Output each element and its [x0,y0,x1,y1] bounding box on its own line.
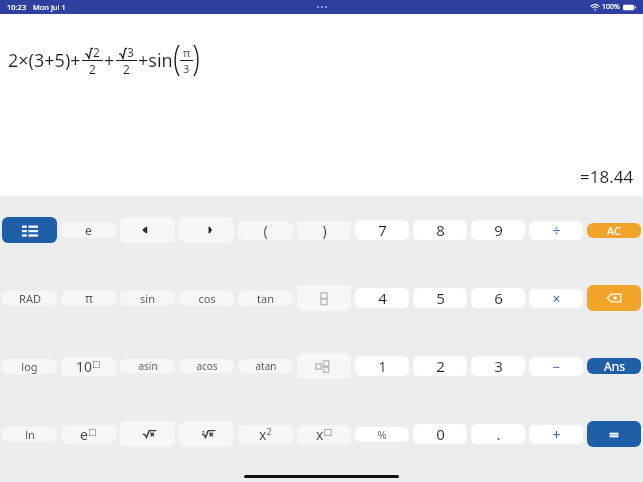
staticText: asin [138,359,158,373]
button[interactable]: 2 [413,356,467,376]
button[interactable]: ) [297,221,351,240]
button[interactable]: Mixed number [297,353,351,379]
staticText: cos [198,291,216,306]
button[interactable]: Equals [587,421,641,447]
button[interactable]: 1 [355,356,409,376]
button[interactable]: sin [120,291,175,306]
staticText: 2 [123,61,130,77]
staticText: 10□ [76,357,101,376]
staticText: + [552,425,561,444]
button[interactable]: History list [2,217,57,243]
staticText: × [552,289,561,308]
button[interactable]: tan [238,291,293,306]
staticText: x□ [316,425,332,444]
staticText: . [496,424,501,444]
button[interactable]: Move right [179,217,234,243]
button[interactable]: asin [120,359,175,373]
staticText: ( [263,221,268,240]
staticText: x2 [259,425,272,444]
button[interactable]: 6 [471,288,525,308]
button[interactable]: ÷ [529,221,583,240]
staticText: 2×(3+5)+ [8,48,81,73]
staticText: acos [196,359,218,373]
staticText: 9 [494,220,503,240]
staticText: 10:23 [7,2,27,12]
button[interactable]: Ans [587,358,641,374]
staticText: sin [140,291,155,306]
staticText: 1 [378,356,387,376]
button[interactable]: − [529,357,583,376]
button[interactable]: ( [238,221,293,240]
button[interactable]: ln [2,427,57,442]
button[interactable]: 7 [355,220,409,240]
button[interactable]: e□ [61,425,116,444]
button[interactable]: Nth root [179,421,234,447]
staticText: 2 [89,61,96,77]
staticText: π [85,290,93,306]
staticText: tan [257,291,274,306]
staticText: 8 [436,220,445,240]
staticText: 3 [127,44,134,60]
button[interactable]: x2 [238,425,293,444]
staticText: 2 [436,356,445,376]
staticText: 3 [183,61,190,76]
button[interactable]: 8 [413,220,467,240]
staticText: AC [607,223,621,238]
button[interactable]: 5 [413,288,467,308]
staticText: =18.44 [580,165,634,188]
staticText: 3 [494,356,503,376]
button[interactable]: RAD [2,291,57,306]
button[interactable]: 4 [355,288,409,308]
button[interactable]: . [471,424,525,444]
button[interactable]: + [529,425,583,444]
staticText: RAD [19,291,41,306]
staticText: − [552,357,561,376]
staticText: 100% [602,2,620,12]
staticText: 6 [494,288,503,308]
staticText: e [85,222,92,238]
button[interactable]: cos [179,291,234,306]
staticText: 5 [436,288,445,308]
staticText: e□ [80,425,97,444]
button[interactable]: acos [179,359,234,373]
button[interactable]: 0 [413,424,467,444]
staticText: + [104,48,115,73]
staticText: ÷ [552,221,561,240]
staticText: % [377,427,387,442]
button[interactable]: 10□ [61,357,116,376]
staticText: ) [322,221,327,240]
staticText: log [21,359,38,374]
staticText: 4 [378,288,387,308]
button[interactable]: % [355,427,409,442]
staticText: 0 [436,424,445,444]
button[interactable]: 9 [471,220,525,240]
staticText: atan [255,359,277,373]
staticText: ln [25,427,35,442]
staticText: π [183,45,191,60]
button[interactable]: × [529,289,583,308]
staticText: Mon Jul 1 [33,2,66,12]
button[interactable]: Backspace [587,285,641,311]
button[interactable]: Move left [120,217,175,243]
staticText: 2 [93,44,100,60]
button[interactable]: atan [238,359,293,373]
staticText: 7 [378,220,387,240]
button[interactable]: x□ [297,425,351,444]
staticText: Ans [604,358,625,374]
button[interactable]: e [61,222,116,238]
button[interactable]: Square root [120,421,175,447]
staticText: +sin [138,48,173,73]
button[interactable]: Fraction [297,285,351,311]
button[interactable]: 3 [471,356,525,376]
button[interactable]: log [2,359,57,374]
button[interactable]: AC [587,223,641,238]
button[interactable]: π [61,290,116,306]
